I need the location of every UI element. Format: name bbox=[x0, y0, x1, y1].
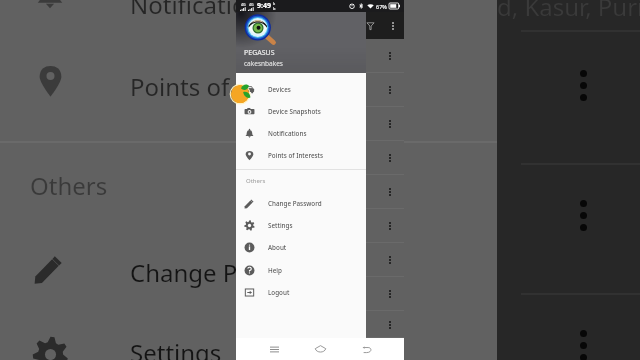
staticText: Others bbox=[246, 177, 266, 185]
button[interactable]: Back bbox=[358, 341, 374, 357]
button[interactable] bbox=[236, 175, 404, 209]
button[interactable] bbox=[236, 141, 404, 175]
button[interactable]: Settings bbox=[236, 214, 366, 236]
staticText: Device Snapshots bbox=[268, 107, 321, 116]
staticText: …, Kasur, Puri... bbox=[239, 130, 275, 137]
button[interactable] bbox=[236, 277, 404, 311]
button[interactable]: Kabir Wala ... bbox=[236, 39, 404, 73]
button[interactable]: Home bbox=[312, 341, 328, 357]
button[interactable]: Recent apps bbox=[266, 341, 282, 357]
staticText: Settings bbox=[268, 221, 293, 230]
button[interactable]: …, Kasur, Puri... bbox=[236, 107, 404, 141]
button[interactable]: Notifications bbox=[236, 122, 366, 144]
staticText: Logout bbox=[268, 288, 290, 297]
button[interactable]: More options bbox=[580, 200, 587, 231]
staticText: About bbox=[268, 243, 287, 252]
staticText: cakesnbakes bbox=[244, 59, 283, 68]
button[interactable]: Points of Interests bbox=[236, 144, 366, 166]
staticText: Others bbox=[30, 169, 108, 202]
button[interactable]: Device Snapshots bbox=[236, 100, 366, 122]
button[interactable]: More options bbox=[383, 16, 403, 36]
button[interactable]: More options bbox=[580, 70, 587, 101]
staticText: k bbox=[273, 1, 276, 6]
button[interactable] bbox=[236, 243, 404, 277]
button[interactable]: Change Password bbox=[236, 192, 366, 214]
staticText: …, Kabirw R... bbox=[239, 96, 271, 103]
staticText: Points of bbox=[130, 70, 230, 103]
button[interactable] bbox=[236, 311, 404, 338]
button[interactable]: About bbox=[236, 236, 366, 258]
button[interactable]: Devices bbox=[236, 78, 366, 100]
button[interactable]: …, Kabirw R... bbox=[236, 73, 404, 107]
staticText: Devices bbox=[268, 85, 291, 94]
staticText: 9:49 bbox=[257, 1, 271, 11]
staticText: 4G bbox=[241, 2, 246, 7]
staticText: Notificatio bbox=[130, 0, 247, 21]
staticText: PEGASUS bbox=[244, 48, 275, 58]
staticText: 4G bbox=[249, 2, 254, 7]
staticText: Notifications bbox=[268, 129, 307, 138]
staticText: b bbox=[273, 6, 276, 11]
staticText: d, Kasur, Puri... bbox=[497, 0, 640, 23]
staticText: Help bbox=[268, 266, 282, 275]
staticText: Kabir Wala ... bbox=[239, 62, 270, 69]
button[interactable]: Logout bbox=[236, 281, 366, 303]
button[interactable] bbox=[236, 209, 404, 243]
staticText: Change P bbox=[130, 256, 238, 289]
staticText: Settings bbox=[130, 336, 222, 360]
button[interactable]: Help bbox=[236, 259, 366, 281]
staticText: 67% bbox=[376, 3, 387, 10]
staticText: Change Password bbox=[268, 199, 322, 208]
button[interactable]: Filter bbox=[360, 16, 380, 36]
button[interactable]: More options bbox=[580, 330, 587, 360]
staticText: Points of Interests bbox=[268, 151, 324, 160]
